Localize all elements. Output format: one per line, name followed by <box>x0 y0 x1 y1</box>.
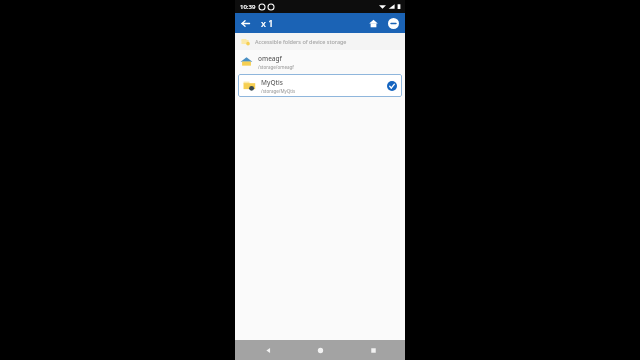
staticText: /storage/omeagf <box>258 64 294 70</box>
button[interactable]: Home <box>300 340 340 360</box>
staticText: 10:39 <box>240 3 256 11</box>
other: Selected <box>386 80 398 92</box>
staticText: omeagf <box>258 54 282 63</box>
staticText: Accessible folders of device storage <box>255 38 347 45</box>
staticText: MyQtis <box>261 78 283 87</box>
button[interactable]: omeagf <box>235 50 405 73</box>
staticText: x 1 <box>261 17 274 29</box>
button[interactable]: Back <box>248 340 288 360</box>
button[interactable]: Recent apps <box>353 340 393 360</box>
button[interactable]: Back <box>235 13 255 33</box>
staticText: /storage/MyQtis <box>261 88 296 94</box>
button[interactable]: Home <box>363 13 383 33</box>
button[interactable]: Remove <box>383 13 403 33</box>
button[interactable]: MyQtis <box>238 74 402 97</box>
